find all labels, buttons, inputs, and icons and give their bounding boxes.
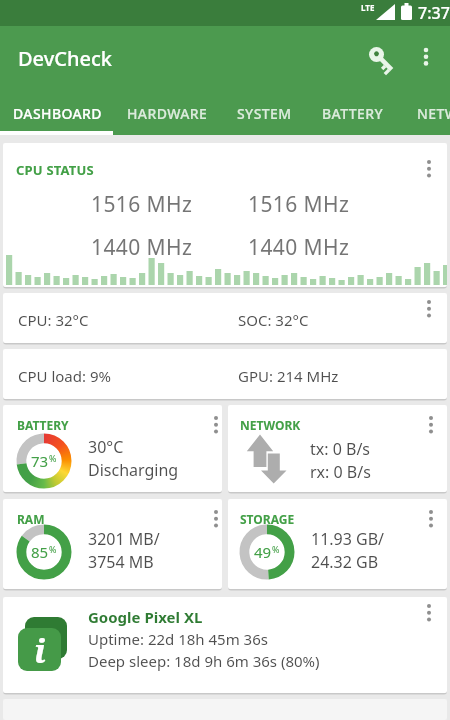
staticText: 3754 MB xyxy=(88,551,154,573)
staticText: RAM xyxy=(17,511,45,527)
button[interactable] xyxy=(206,509,222,529)
staticText: SYSTEM xyxy=(237,104,292,123)
staticText: DevCheck xyxy=(18,45,112,72)
staticText: CPU: 32°C xyxy=(18,310,89,330)
staticText: 3201 MB/ xyxy=(88,528,160,550)
staticText: 73 xyxy=(31,451,49,471)
staticText: CPU STATUS xyxy=(16,161,94,179)
button[interactable]: CPU: 32°C xyxy=(3,293,447,343)
staticText: 85 xyxy=(31,542,49,562)
staticText: rx: 0 B/s xyxy=(310,461,371,483)
staticText: CPU load: 9% xyxy=(18,366,111,386)
button[interactable]: i xyxy=(3,597,447,693)
button[interactable] xyxy=(421,415,441,435)
staticText: 24.32 GB xyxy=(311,551,379,573)
staticText: BATTERY xyxy=(17,417,69,433)
button[interactable] xyxy=(416,47,436,67)
staticText: 1516 MHz xyxy=(248,190,350,219)
staticText: BATTERY xyxy=(322,104,383,123)
staticText: SOC: 32°C xyxy=(238,310,309,330)
button[interactable]: NETWORK xyxy=(228,405,447,492)
button[interactable]: SYSTEM xyxy=(225,90,322,135)
button[interactable] xyxy=(419,299,439,319)
button[interactable]: BATTERY xyxy=(3,405,222,492)
staticText: NETWORK xyxy=(240,417,301,433)
button[interactable]: NETWORK xyxy=(417,90,450,135)
button[interactable] xyxy=(369,47,399,77)
staticText: 11.93 GB/ xyxy=(311,528,385,550)
staticText: i xyxy=(34,628,46,671)
button[interactable]: DASHBOARD xyxy=(0,90,113,135)
button[interactable]: BATTERY xyxy=(322,90,417,135)
staticText: % xyxy=(272,543,280,555)
staticText: GPU: 214 MHz xyxy=(238,366,339,386)
staticText: 1516 MHz xyxy=(91,190,193,219)
staticText: % xyxy=(49,452,57,464)
button[interactable] xyxy=(421,509,441,529)
staticText: STORAGE xyxy=(240,511,295,527)
staticText: Discharging xyxy=(88,459,179,481)
staticText: tx: 0 B/s xyxy=(310,438,371,460)
button[interactable]: STORAGE xyxy=(228,499,447,589)
staticText: DASHBOARD xyxy=(13,104,102,123)
staticText: HARDWARE xyxy=(127,104,208,123)
button[interactable]: CPU STATUS xyxy=(3,143,447,287)
staticText: 1440 MHz xyxy=(91,233,193,262)
staticText: NETWORK xyxy=(417,104,450,123)
button[interactable]: CPU load: 9% xyxy=(3,349,447,399)
staticText: Google Pixel XL xyxy=(88,607,203,627)
button[interactable]: HARDWARE xyxy=(113,90,225,135)
staticText: 49 xyxy=(254,542,272,562)
staticText: % xyxy=(49,543,57,555)
staticText: 30°C xyxy=(88,436,124,458)
staticText: LTE xyxy=(361,2,375,13)
staticText: 1440 MHz xyxy=(248,233,350,262)
staticText: 7:37 xyxy=(418,2,450,24)
staticText: Deep sleep: 18d 9h 6m 36s (80%) xyxy=(88,651,320,671)
button[interactable]: RAM xyxy=(3,499,222,589)
button[interactable] xyxy=(206,415,222,435)
staticText: Uptime: 22d 18h 45m 36s xyxy=(88,629,268,649)
button[interactable] xyxy=(419,159,439,179)
button[interactable] xyxy=(419,603,439,623)
